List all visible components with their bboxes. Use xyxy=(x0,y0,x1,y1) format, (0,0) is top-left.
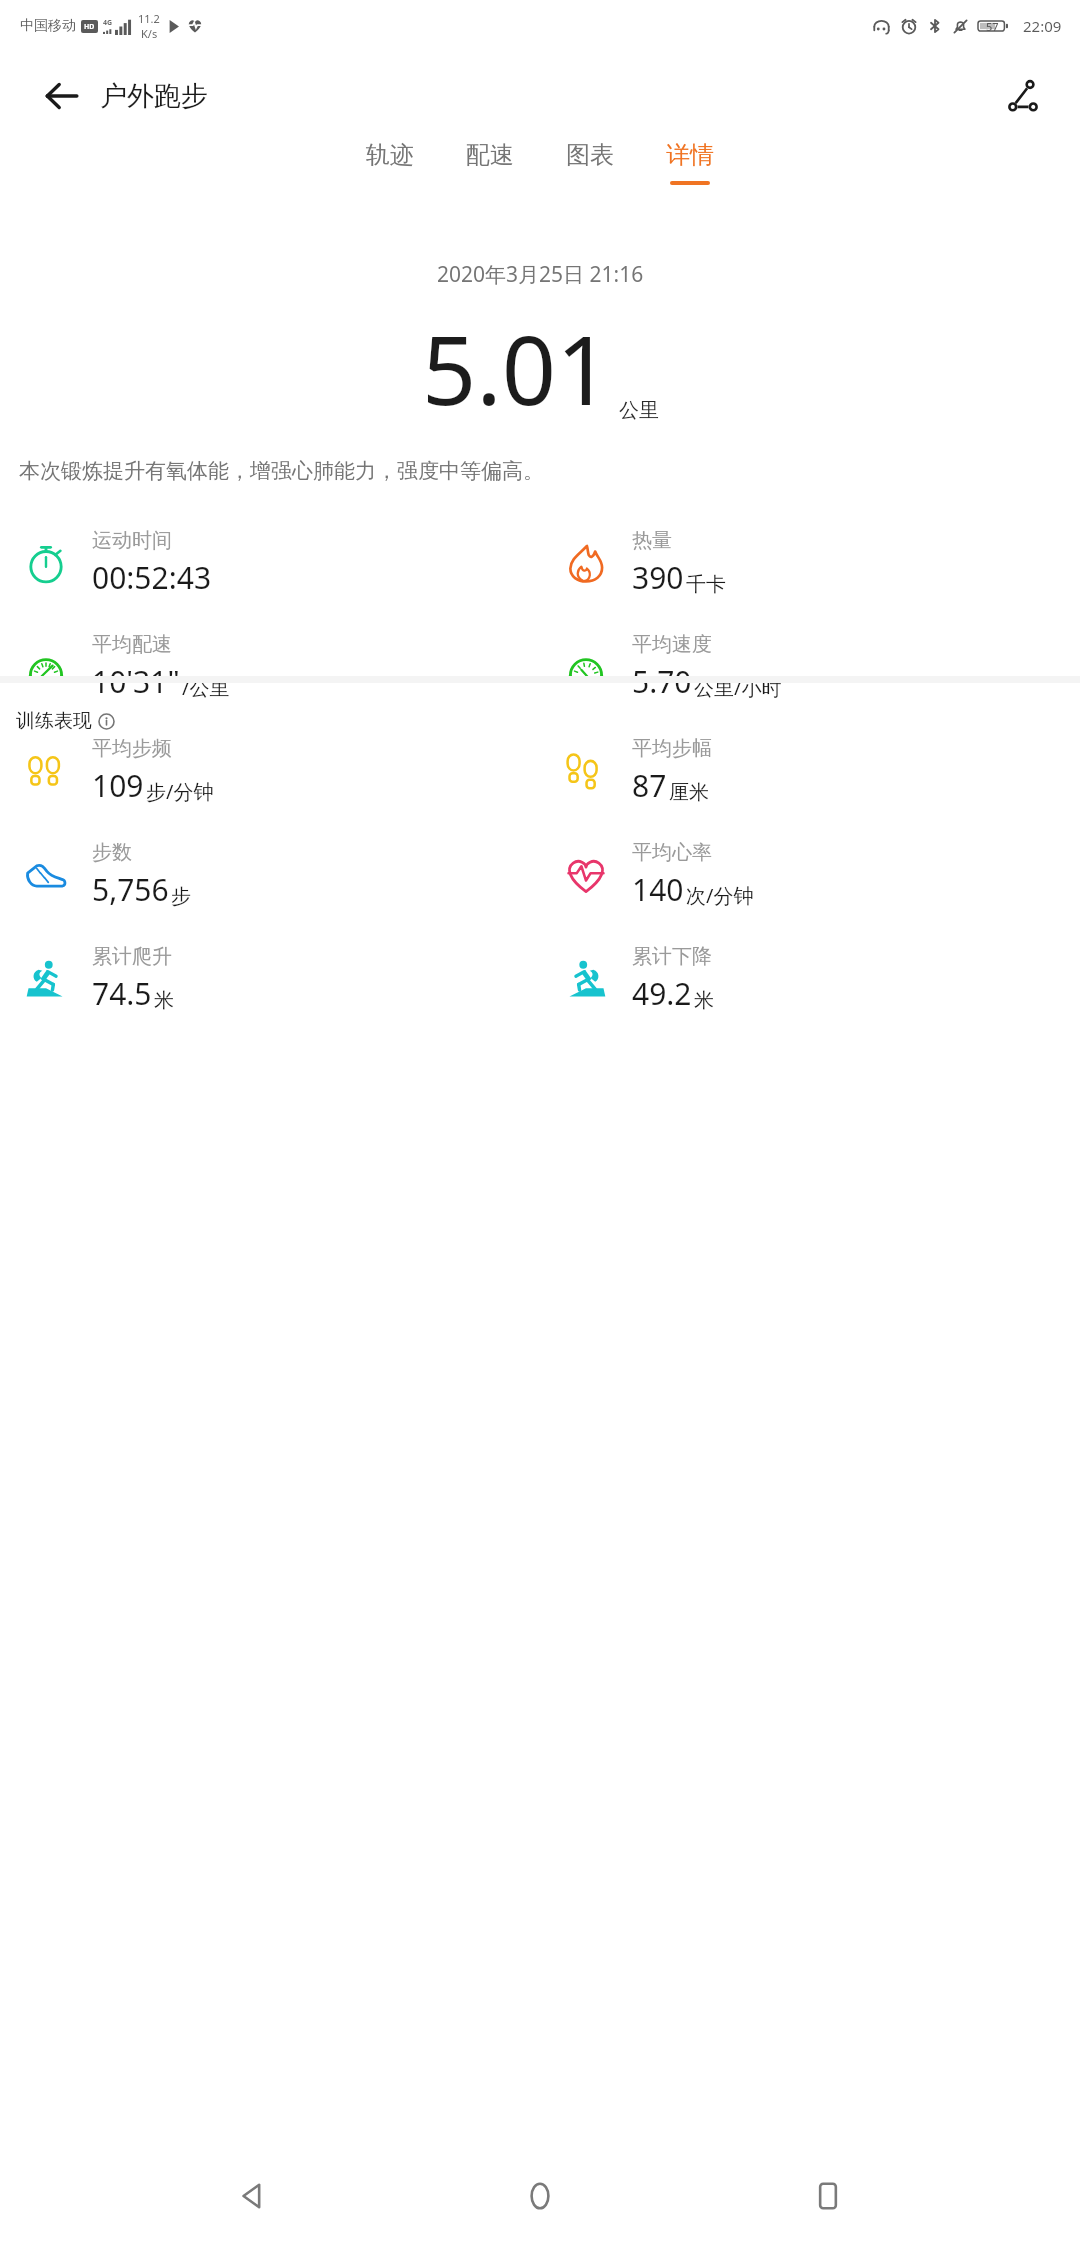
staticText: 平均步幅 xyxy=(632,736,712,761)
staticText: 74.5 xyxy=(92,973,152,1014)
button[interactable]: Recents xyxy=(793,2161,863,2231)
staticText: 中国移动 xyxy=(20,17,76,35)
staticText: K/s xyxy=(141,26,158,41)
staticText: 5.01 xyxy=(422,303,611,432)
staticText: 87 xyxy=(632,765,667,806)
button[interactable]: 平均步频 xyxy=(0,736,540,806)
staticText: 140 xyxy=(632,869,684,910)
staticText: 户外跑步 xyxy=(100,79,208,113)
staticText: 平均心率 xyxy=(632,840,712,865)
staticText: 详情 xyxy=(666,140,714,170)
staticText: 步 xyxy=(171,884,191,909)
button[interactable]: 运动时间 xyxy=(0,528,540,598)
staticText: 4G xyxy=(103,18,113,28)
button[interactable]: 轨迹 xyxy=(340,140,440,181)
staticText: 步数 xyxy=(92,840,132,865)
staticText: 平均速度 xyxy=(632,632,712,657)
staticText: 米 xyxy=(154,988,174,1013)
staticText: 米 xyxy=(694,988,714,1013)
button[interactable]: 热量 xyxy=(540,528,1080,598)
staticText: HD xyxy=(84,22,95,32)
button[interactable]: Home xyxy=(505,2161,575,2231)
button[interactable]: 平均配速 xyxy=(0,632,540,702)
staticText: 5.70 xyxy=(632,661,692,702)
staticText: 2020年3月25日 21:16 xyxy=(437,260,644,289)
staticText: 累计爬升 xyxy=(92,944,172,969)
staticText: 训练表现 xyxy=(16,709,92,733)
staticText: 本次锻炼提升有氧体能，增强心肺能力，强度中等偏高。 xyxy=(19,458,544,484)
button[interactable]: Share xyxy=(996,69,1050,123)
button[interactable]: 平均步幅 xyxy=(540,736,1080,806)
staticText: 公里/小时 xyxy=(694,674,782,701)
button[interactable]: Back xyxy=(34,69,88,123)
button[interactable]: 配速 xyxy=(440,140,540,181)
staticText: 平均步频 xyxy=(92,736,172,761)
button[interactable]: 步数 xyxy=(0,840,540,910)
staticText: 千卡 xyxy=(686,572,726,597)
staticText: 轨迹 xyxy=(366,140,414,170)
staticText: 49.2 xyxy=(632,973,692,1014)
staticText: 配速 xyxy=(466,140,514,170)
staticText: 步/分钟 xyxy=(146,778,214,805)
staticText: 57 xyxy=(986,19,999,34)
button[interactable]: 平均速度 xyxy=(540,632,1080,702)
button[interactable]: Back xyxy=(218,2161,288,2231)
staticText: 00:52:43 xyxy=(92,557,212,598)
button[interactable]: 平均心率 xyxy=(540,840,1080,910)
staticText: 次/分钟 xyxy=(686,882,754,909)
staticText: 图表 xyxy=(566,140,614,170)
staticText: 5,756 xyxy=(92,869,169,910)
staticText: 运动时间 xyxy=(92,528,172,553)
staticText: 22:09 xyxy=(1023,16,1062,36)
staticText: 11.2 xyxy=(138,11,160,26)
staticText: 厘米 xyxy=(669,780,709,805)
button[interactable]: 累计爬升 xyxy=(0,944,540,1014)
button[interactable]: 详情 xyxy=(640,140,740,185)
staticText: 390 xyxy=(632,557,684,598)
button[interactable]: 图表 xyxy=(540,140,640,181)
button[interactable]: 训练表现 xyxy=(16,709,115,733)
staticText: 累计下降 xyxy=(632,944,712,969)
button[interactable]: 累计下降 xyxy=(540,944,1080,1014)
staticText: 平均配速 xyxy=(92,632,172,657)
staticText: 公里 xyxy=(619,398,659,423)
staticText: 10'31" xyxy=(92,661,180,702)
staticText: 109 xyxy=(92,765,144,806)
staticText: 热量 xyxy=(632,528,672,553)
staticText: /公里 xyxy=(182,674,230,701)
